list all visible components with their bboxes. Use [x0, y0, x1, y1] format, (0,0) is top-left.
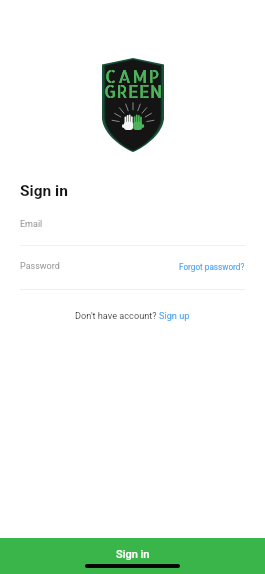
staticText: Email: [20, 219, 43, 230]
button[interactable]: Sign in: [0, 538, 265, 574]
staticText: Sign up: [159, 310, 190, 321]
staticText: Forgot password?: [179, 262, 245, 272]
staticText: Password: [20, 261, 60, 272]
staticText: Sign in: [20, 182, 68, 200]
staticText: GREEN: [104, 80, 163, 102]
staticText: GREEN: [104, 80, 163, 102]
button[interactable]: Password: [20, 261, 245, 290]
staticText: Don't have account?: [75, 310, 159, 321]
button[interactable]: Sign up: [159, 310, 190, 321]
staticText: CAMP: [105, 65, 161, 87]
staticText: CAMP: [105, 65, 161, 87]
button[interactable]: Email: [20, 219, 245, 246]
staticText: Sign in: [116, 548, 150, 561]
